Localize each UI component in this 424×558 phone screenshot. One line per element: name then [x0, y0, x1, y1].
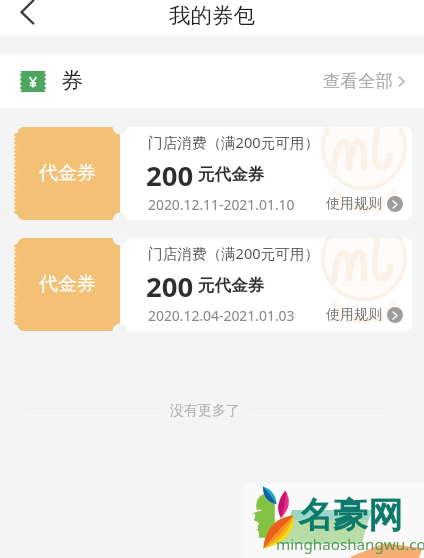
button[interactable]: 代金券 — [0, 127, 424, 220]
staticText: 200 — [146, 157, 194, 194]
staticText: 使用规则 — [326, 195, 382, 213]
staticText: 代金券 — [39, 272, 96, 296]
button[interactable]: 代金券 — [0, 238, 424, 331]
staticText: 名豪网 — [298, 493, 403, 537]
staticText: 券 — [61, 67, 83, 95]
staticText: minghaoshangwu.com — [276, 534, 424, 555]
button[interactable]: 券 — [0, 54, 424, 108]
staticText: 2020.12.04-2021.01.03 — [148, 306, 295, 325]
button[interactable]: 使用规则 — [326, 306, 403, 324]
button[interactable]: 使用规则 — [326, 195, 403, 213]
staticText: 2020.12.11-2021.01.10 — [148, 195, 295, 214]
staticText: 门店消费（满200元可用） — [148, 132, 319, 152]
staticText: 没有更多了 — [170, 402, 240, 420]
button[interactable]: Back — [0, 0, 44, 35]
staticText: 使用规则 — [326, 306, 382, 324]
staticText: 门店消费（满200元可用） — [148, 243, 319, 263]
staticText: 元代金券 — [198, 164, 264, 185]
staticText: 代金券 — [39, 161, 96, 185]
staticText: 查看全部 — [323, 70, 393, 92]
staticText: 我的券包 — [169, 2, 255, 29]
staticText: 元代金券 — [198, 275, 264, 296]
staticText: 200 — [146, 268, 194, 305]
